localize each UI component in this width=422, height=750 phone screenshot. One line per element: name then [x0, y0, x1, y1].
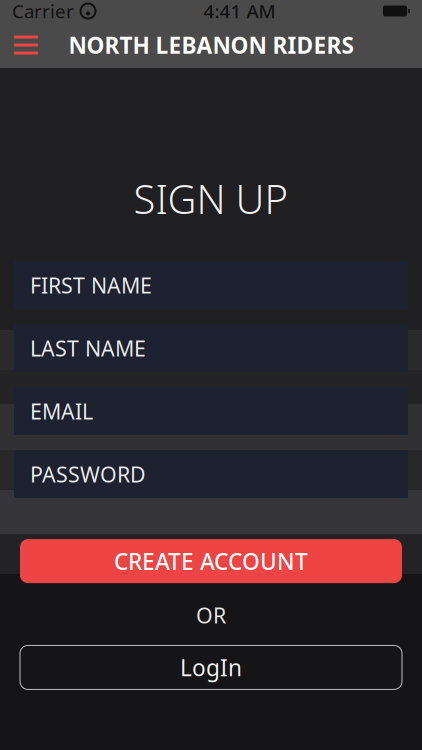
- staticText: 4:41 AM: [203, 0, 275, 23]
- button[interactable]: LogIn: [20, 645, 402, 689]
- staticText: SIGN UP: [133, 172, 288, 225]
- button[interactable]: PASSWORD: [14, 450, 408, 498]
- button[interactable]: LAST NAME: [14, 324, 408, 372]
- staticText: LogIn: [180, 652, 242, 682]
- button[interactable]: Menu: [4, 22, 48, 68]
- staticText: NORTH LEBANON RIDERS: [68, 30, 353, 60]
- button[interactable]: CREATE ACCOUNT: [20, 539, 402, 583]
- staticText: Carrier: [12, 0, 74, 23]
- staticText: OR: [196, 601, 226, 629]
- button[interactable]: FIRST NAME: [14, 261, 408, 309]
- staticText: PASSWORD: [30, 460, 146, 488]
- staticText: EMAIL: [30, 397, 93, 425]
- staticText: LAST NAME: [30, 334, 146, 362]
- staticText: FIRST NAME: [30, 271, 152, 299]
- staticText: CREATE ACCOUNT: [114, 546, 308, 576]
- button[interactable]: EMAIL: [14, 387, 408, 435]
